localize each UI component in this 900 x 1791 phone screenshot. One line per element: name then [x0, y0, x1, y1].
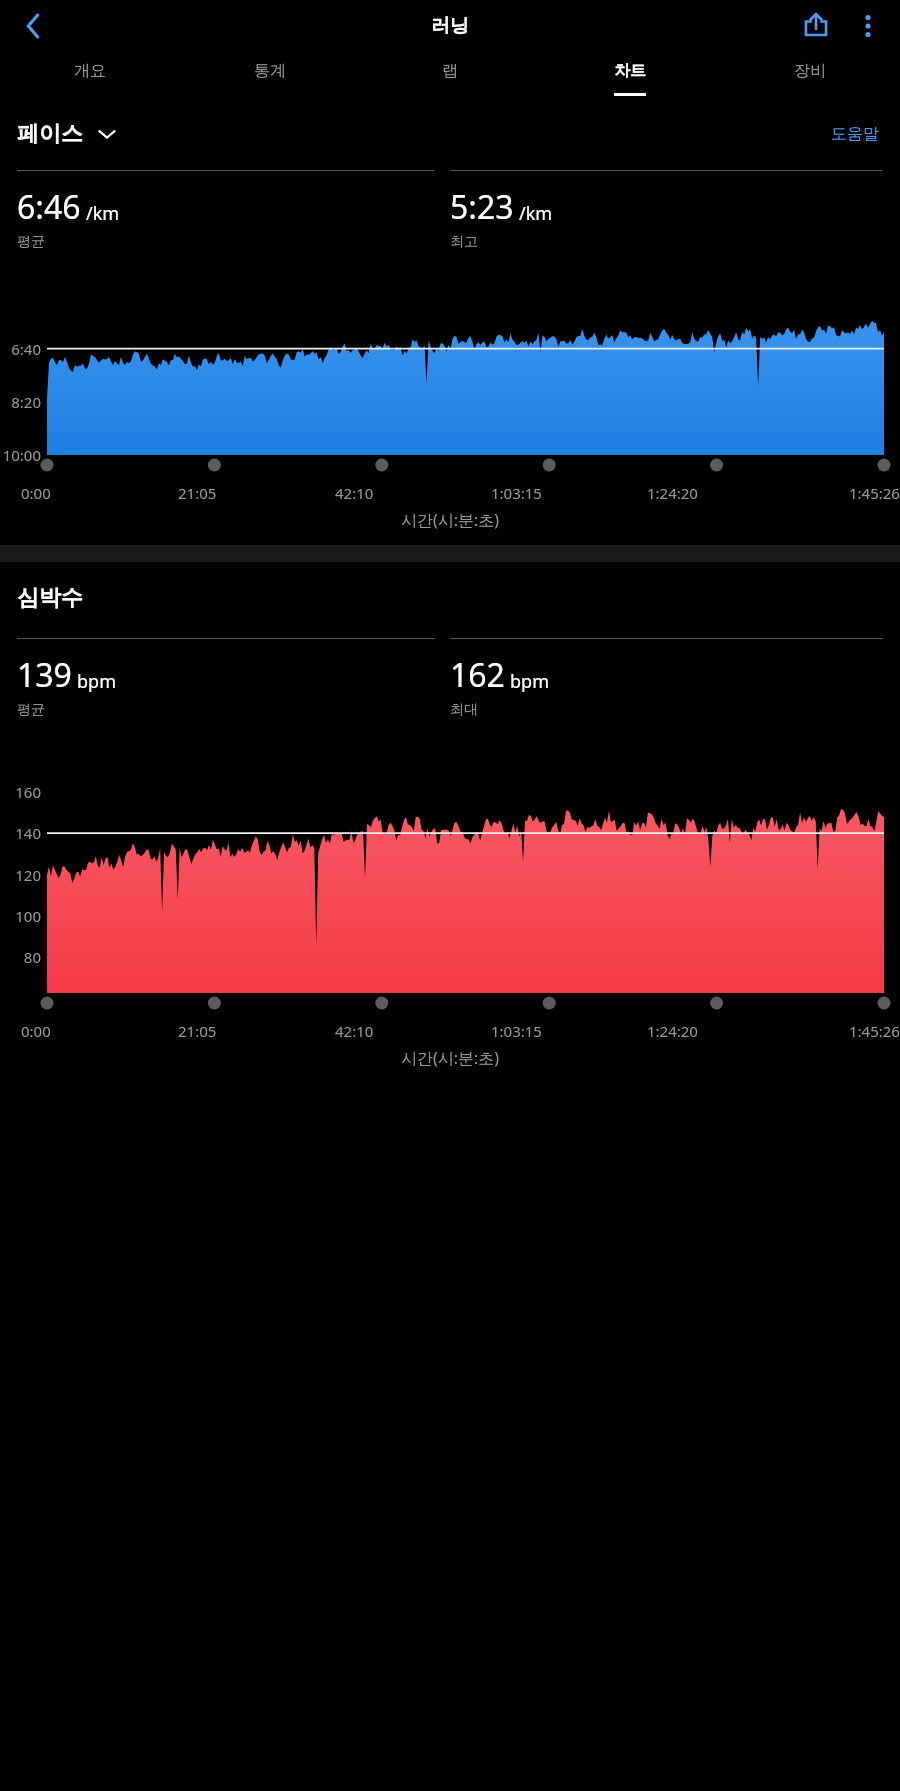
staticText: 140 — [0, 823, 41, 843]
button[interactable]: 통계 — [180, 52, 360, 112]
button[interactable]: 장비 — [720, 52, 900, 112]
staticText: 10:00 — [0, 445, 41, 465]
button[interactable]: 랩 — [360, 52, 540, 112]
button[interactable]: 도움말 — [827, 120, 883, 148]
staticText: 80 — [0, 947, 41, 967]
staticText: 100 — [0, 906, 41, 926]
staticText: 도움말 — [831, 124, 879, 144]
staticText: 8:20 — [0, 392, 41, 412]
staticText: 장비 — [794, 61, 826, 81]
staticText: 평균 — [17, 701, 45, 719]
staticText: /km — [519, 201, 553, 226]
staticText: 1:03:15 — [491, 483, 542, 503]
staticText: 차트 — [614, 61, 646, 81]
button[interactable]: Share — [790, 0, 842, 52]
button[interactable]: Back — [10, 3, 56, 49]
button[interactable]: 개요 — [0, 52, 180, 112]
staticText: bpm — [510, 669, 549, 694]
staticText: 1:24:20 — [647, 483, 698, 503]
button[interactable]: More options — [842, 0, 894, 52]
staticText: 심박수 — [17, 584, 83, 612]
staticText: 러닝 — [431, 14, 469, 38]
staticText: 0:00 — [21, 1021, 51, 1041]
staticText: 0:00 — [21, 483, 51, 503]
staticText: 시간(시:분:초) — [0, 1047, 900, 1069]
staticText: 6:40 — [0, 339, 41, 359]
staticText: 평균 — [17, 233, 45, 251]
staticText: 1:03:15 — [491, 1021, 542, 1041]
staticText: 1:45:26 — [849, 483, 900, 503]
staticText: 통계 — [254, 61, 286, 81]
staticText: 6:46 — [17, 185, 81, 229]
staticText: 최대 — [450, 701, 478, 719]
staticText: 랩 — [442, 61, 458, 81]
staticText: 5:23 — [450, 185, 514, 229]
staticText: bpm — [77, 669, 116, 694]
staticText: 42:10 — [335, 1021, 374, 1041]
button[interactable]: 차트 — [540, 52, 720, 112]
staticText: 42:10 — [335, 483, 374, 503]
staticText: /km — [86, 201, 120, 226]
staticText: 개요 — [74, 61, 106, 81]
staticText: 21:05 — [178, 1021, 217, 1041]
staticText: 120 — [0, 865, 41, 885]
staticText: 1:45:26 — [849, 1021, 900, 1041]
staticText: 21:05 — [178, 483, 217, 503]
staticText: 1:24:20 — [647, 1021, 698, 1041]
staticText: 최고 — [450, 233, 478, 251]
staticText: 160 — [0, 782, 41, 802]
staticText: 시간(시:분:초) — [0, 509, 900, 531]
staticText: 162 — [450, 653, 505, 697]
staticText: 139 — [17, 653, 72, 697]
staticText: 페이스 — [17, 120, 83, 148]
button[interactable]: 페이스 — [17, 120, 117, 148]
